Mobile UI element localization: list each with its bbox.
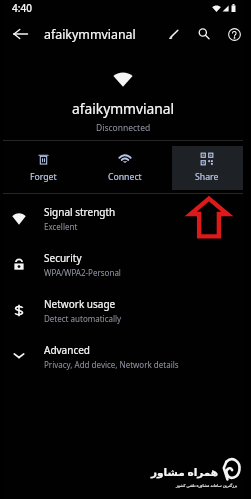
staticText: afaikymmvianal: [72, 99, 175, 118]
button[interactable]: Signal strength: [3, 195, 243, 241]
staticText: Signal strength: [44, 205, 116, 219]
staticText: Excellent: [44, 221, 78, 232]
staticText: WPA/WPA2-Personal: [44, 267, 121, 278]
staticText: Forget: [30, 171, 57, 183]
button[interactable]: Edit: [160, 20, 188, 48]
staticText: afaikymmvianal: [44, 26, 136, 43]
staticText: Detect automatically: [44, 313, 122, 324]
staticText: همراه مشاور: [151, 465, 219, 479]
button[interactable]: Security: [3, 241, 243, 287]
staticText: Connect: [108, 171, 142, 183]
staticText: Security: [44, 251, 82, 265]
button[interactable]: Connect: [84, 141, 166, 193]
staticText: Privacy, Add device, Network details: [44, 359, 179, 370]
button[interactable]: Back: [6, 20, 34, 48]
staticText: Advanced: [44, 343, 90, 357]
staticText: Disconnected: [96, 122, 151, 134]
staticText: Network usage: [44, 297, 116, 311]
button[interactable]: Network usage: [3, 287, 243, 333]
button[interactable]: Search: [190, 20, 218, 48]
button[interactable]: Share: [166, 141, 248, 193]
button[interactable]: Forget: [3, 141, 84, 193]
staticText: Share: [195, 171, 219, 183]
button[interactable]: Advanced: [3, 333, 243, 379]
staticText: 4:40: [12, 1, 32, 15]
button[interactable]: Help: [220, 20, 248, 48]
staticText: بزرگترین سامانه مشاوره تلفنی کشور: [176, 483, 238, 488]
